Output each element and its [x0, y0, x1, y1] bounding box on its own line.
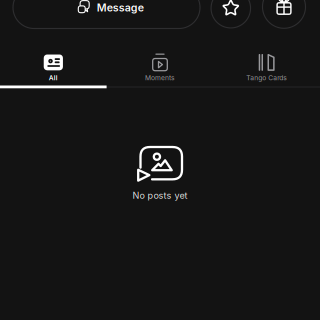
button[interactable]: Favourites [211, 0, 251, 28]
staticText: Moments [145, 74, 175, 82]
staticText: Tango Cards [246, 74, 287, 82]
staticText: Message [97, 1, 144, 14]
button[interactable]: Message [13, 0, 200, 28]
button[interactable]: All [0, 48, 107, 86]
button[interactable]: Gifts [262, 0, 305, 28]
staticText: No posts yet [132, 190, 187, 201]
button[interactable]: Tango Cards [213, 48, 320, 86]
staticText: All [49, 74, 58, 82]
button[interactable]: Moments [107, 48, 213, 86]
